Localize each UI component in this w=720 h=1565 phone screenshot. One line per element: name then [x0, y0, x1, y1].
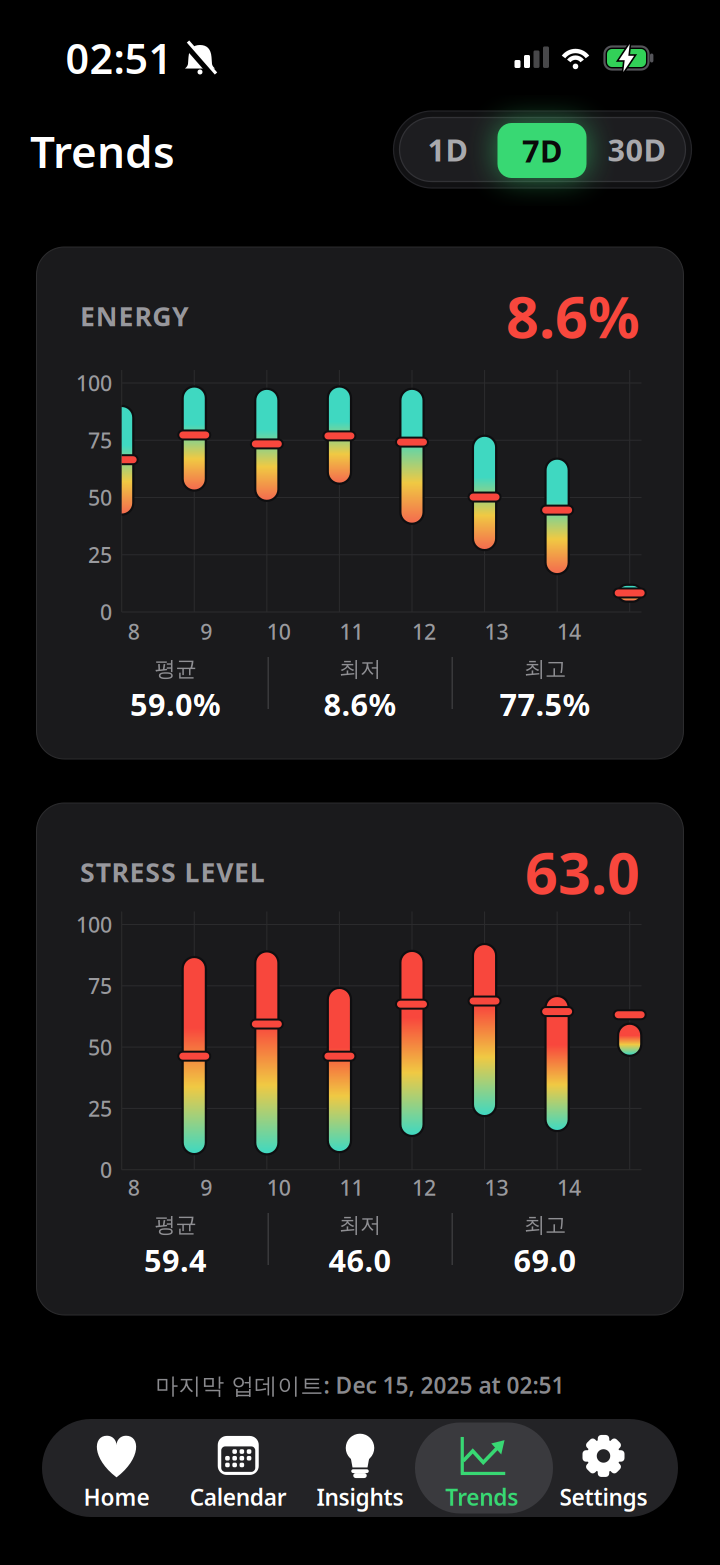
staticText: 마지막 업데이트: Dec 15, 2025 at 02:51: [155, 1370, 564, 1400]
staticText: 최저: [339, 656, 381, 682]
staticText: ENERGY: [80, 298, 189, 334]
staticText: 59.0%: [130, 684, 221, 724]
staticText: 0: [100, 598, 112, 626]
staticText: 50: [88, 1033, 112, 1061]
staticText: 평균: [154, 1212, 196, 1238]
staticText: 최고: [524, 1212, 566, 1238]
staticText: 13: [484, 617, 508, 646]
staticText: 7D: [522, 130, 562, 171]
staticText: Trends: [445, 1482, 518, 1512]
staticText: 평균: [154, 656, 196, 682]
staticText: 25: [88, 1094, 112, 1122]
button[interactable]: Home: [56, 1419, 177, 1517]
staticText: 69.0: [513, 1240, 576, 1280]
staticText: 8: [128, 1173, 140, 1202]
button[interactable]: Settings: [543, 1419, 664, 1517]
staticText: 14: [557, 617, 581, 646]
staticText: 63.0: [525, 834, 640, 910]
staticText: Calendar: [190, 1482, 287, 1512]
staticText: STRESS LEVEL: [80, 854, 265, 890]
staticText: Settings: [559, 1482, 647, 1512]
staticText: 75: [88, 426, 112, 454]
staticText: 8.6%: [323, 684, 396, 724]
staticText: 9: [200, 617, 212, 646]
staticText: Insights: [316, 1482, 403, 1512]
staticText: 100: [76, 369, 112, 397]
staticText: 12: [412, 1173, 436, 1202]
staticText: 11: [339, 617, 363, 646]
staticText: 46.0: [328, 1240, 391, 1280]
staticText: 14: [557, 1173, 581, 1202]
staticText: 8: [128, 617, 140, 646]
staticText: 최고: [524, 656, 566, 682]
staticText: 8.6%: [506, 278, 640, 354]
staticText: 50: [88, 483, 112, 512]
staticText: 59.4: [144, 1240, 207, 1280]
staticText: 최저: [339, 1212, 381, 1238]
staticText: 25: [88, 541, 112, 569]
staticText: 10: [267, 617, 291, 646]
button[interactable]: Trends: [421, 1419, 543, 1517]
staticText: Trends: [30, 122, 175, 180]
staticText: 75: [88, 972, 112, 1000]
staticText: Home: [83, 1482, 149, 1512]
staticText: 9: [200, 1173, 212, 1202]
staticText: 13: [484, 1173, 508, 1202]
staticText: 1D: [427, 129, 467, 170]
button[interactable]: 30D: [591, 117, 681, 181]
staticText: 11: [339, 1173, 363, 1202]
staticText: 77.5%: [499, 684, 590, 724]
staticText: 10: [267, 1173, 291, 1202]
staticText: 30D: [607, 129, 665, 170]
button[interactable]: Insights: [299, 1419, 421, 1517]
staticText: 02:51: [65, 31, 172, 85]
button[interactable]: 1D: [402, 117, 492, 181]
staticText: 100: [76, 910, 112, 939]
staticText: 12: [412, 617, 436, 646]
staticText: 0: [100, 1155, 112, 1184]
button[interactable]: Calendar: [177, 1419, 299, 1517]
button[interactable]: 7D: [497, 123, 586, 178]
